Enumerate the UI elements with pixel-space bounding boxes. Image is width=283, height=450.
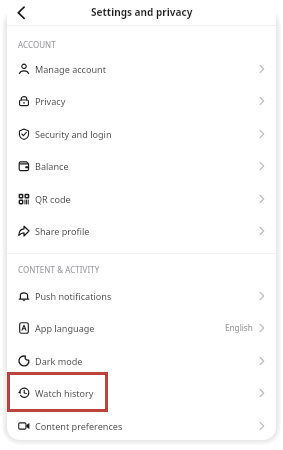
staticText: Settings and privacy [91, 5, 193, 19]
button[interactable]: Security and login [7, 117, 276, 150]
staticText: Content preferences [35, 420, 123, 432]
staticText: ACCOUNT [18, 39, 56, 50]
staticText: Push notifications [35, 290, 112, 302]
staticText: CONTENT & ACTIVITY [18, 264, 100, 275]
button[interactable]: Back [11, 3, 31, 23]
button[interactable]: Balance [7, 149, 276, 182]
staticText: Balance [35, 160, 69, 172]
staticText: Security and login [35, 128, 112, 140]
button[interactable]: App language [7, 311, 276, 344]
staticText: Watch history [35, 387, 94, 399]
button[interactable]: Manage account [7, 52, 276, 85]
button[interactable]: Privacy [7, 84, 276, 117]
staticText: English [225, 322, 253, 333]
staticText: App language [35, 322, 95, 334]
button[interactable]: Dark mode [7, 344, 276, 377]
staticText: Privacy [35, 95, 66, 107]
staticText: Manage account [35, 63, 107, 75]
staticText: Share profile [35, 225, 90, 237]
staticText: Dark mode [35, 355, 83, 367]
button[interactable]: Content preferences [7, 409, 276, 440]
button[interactable]: Push notifications [7, 279, 276, 312]
button[interactable]: Watch history [7, 376, 276, 409]
button[interactable]: QR code [7, 182, 276, 215]
button[interactable]: Share profile [7, 214, 276, 247]
staticText: QR code [35, 193, 71, 205]
